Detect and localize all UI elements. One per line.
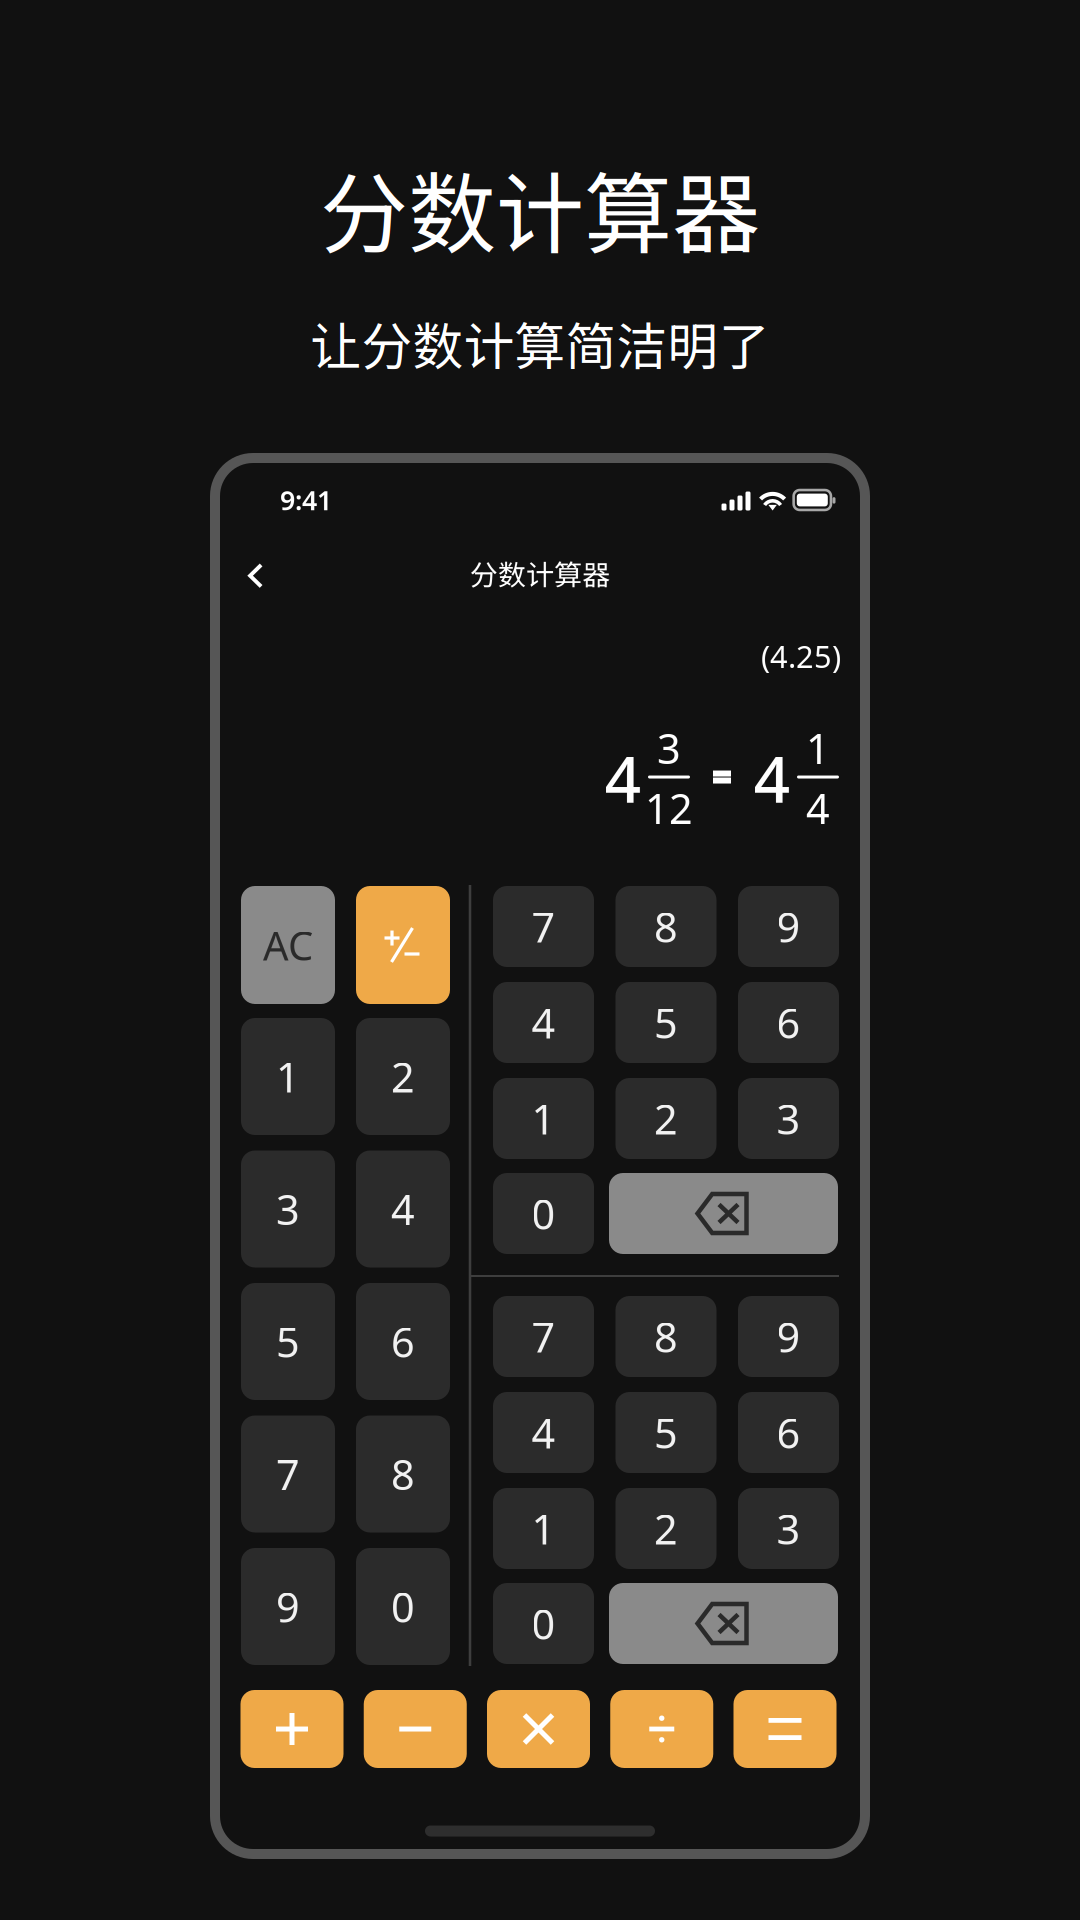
button[interactable]: 2 [356,1018,450,1135]
staticText: 9 [776,1309,800,1364]
button[interactable]: 9 [738,886,839,967]
staticText: 3 [276,1182,300,1236]
button[interactable]: Delete [609,1583,838,1664]
button[interactable]: Toggle sign [356,886,450,1004]
staticText: 6 [391,1314,415,1369]
button[interactable]: 0 [493,1583,594,1664]
staticText: 4 [604,735,641,820]
button[interactable]: 5 [241,1283,335,1400]
staticText: 4 [753,735,790,820]
staticText: 1 [531,1091,555,1146]
staticText: 4 [531,995,555,1050]
staticText: 1 [531,1501,555,1556]
button[interactable]: 7 [493,1296,594,1377]
button[interactable]: 4 [356,1150,450,1267]
button[interactable]: Add [220,463,860,1849]
staticText: 3 [657,721,681,775]
button[interactable]: 1 [241,1018,335,1135]
button[interactable]: 5 [615,1392,716,1473]
button[interactable]: 6 [738,1392,839,1473]
button[interactable]: 7 [241,1415,335,1532]
button[interactable]: 7 [493,886,594,967]
button[interactable]: AC [241,886,335,1004]
button[interactable]: 8 [356,1415,450,1532]
button[interactable]: 0 [356,1548,450,1665]
staticText: 12 [645,781,693,835]
button[interactable]: 2 [615,1488,716,1569]
staticText: 8 [391,1447,415,1501]
staticText: 4 [531,1405,555,1460]
staticText: 分数计算器 [470,553,610,593]
button[interactable]: 1 [493,1078,594,1159]
button[interactable]: 6 [356,1283,450,1400]
staticText: AC [263,918,313,971]
button[interactable]: 9 [738,1296,839,1377]
staticText: (4.25) [761,636,841,676]
button[interactable]: 3 [738,1078,839,1159]
staticText: 6 [776,995,800,1050]
staticText: 5 [654,995,678,1050]
staticText: 5 [276,1314,300,1369]
button[interactable]: 4 [493,982,594,1063]
button[interactable]: Multiply [220,463,860,1849]
staticText: 3 [776,1091,800,1146]
button[interactable]: 0 [493,1173,594,1254]
staticText: 7 [531,1309,555,1364]
staticText: 4 [806,781,830,835]
button[interactable]: 1 [493,1488,594,1569]
staticText: 2 [654,1091,678,1146]
staticText: 分数计算器 [320,144,760,272]
button[interactable]: Subtract [220,463,860,1849]
staticText: 0 [531,1596,555,1651]
staticText: 1 [806,721,830,775]
staticText: 1 [276,1049,300,1104]
staticText: 2 [654,1501,678,1556]
button[interactable]: 6 [738,982,839,1063]
button[interactable]: 8 [615,886,716,967]
staticText: 5 [654,1405,678,1460]
staticText: 0 [531,1186,555,1241]
staticText: 0 [391,1579,415,1634]
staticText: 7 [276,1447,300,1501]
button[interactable]: Equals [220,463,860,1849]
button[interactable]: 2 [615,1078,716,1159]
staticText: 让分数计算简洁明了 [310,306,769,380]
button[interactable]: Delete [609,1173,838,1254]
staticText: 7 [531,899,555,954]
staticText: 3 [776,1501,800,1556]
button[interactable]: Back [228,548,284,604]
button[interactable]: 3 [241,1150,335,1267]
staticText: 9 [276,1579,300,1634]
staticText: 2 [391,1049,415,1104]
button[interactable]: 8 [615,1296,716,1377]
button[interactable]: 5 [615,982,716,1063]
staticText: 8 [654,1309,678,1364]
staticText: 4 [391,1182,415,1236]
staticText: 9 [776,899,800,954]
button[interactable]: 3 [738,1488,839,1569]
staticText: 9:41 [280,482,332,518]
staticText: 8 [654,899,678,954]
button[interactable]: Divide [220,463,860,1849]
button[interactable]: 4 [493,1392,594,1473]
staticText: 6 [776,1405,800,1460]
button[interactable]: 9 [241,1548,335,1665]
